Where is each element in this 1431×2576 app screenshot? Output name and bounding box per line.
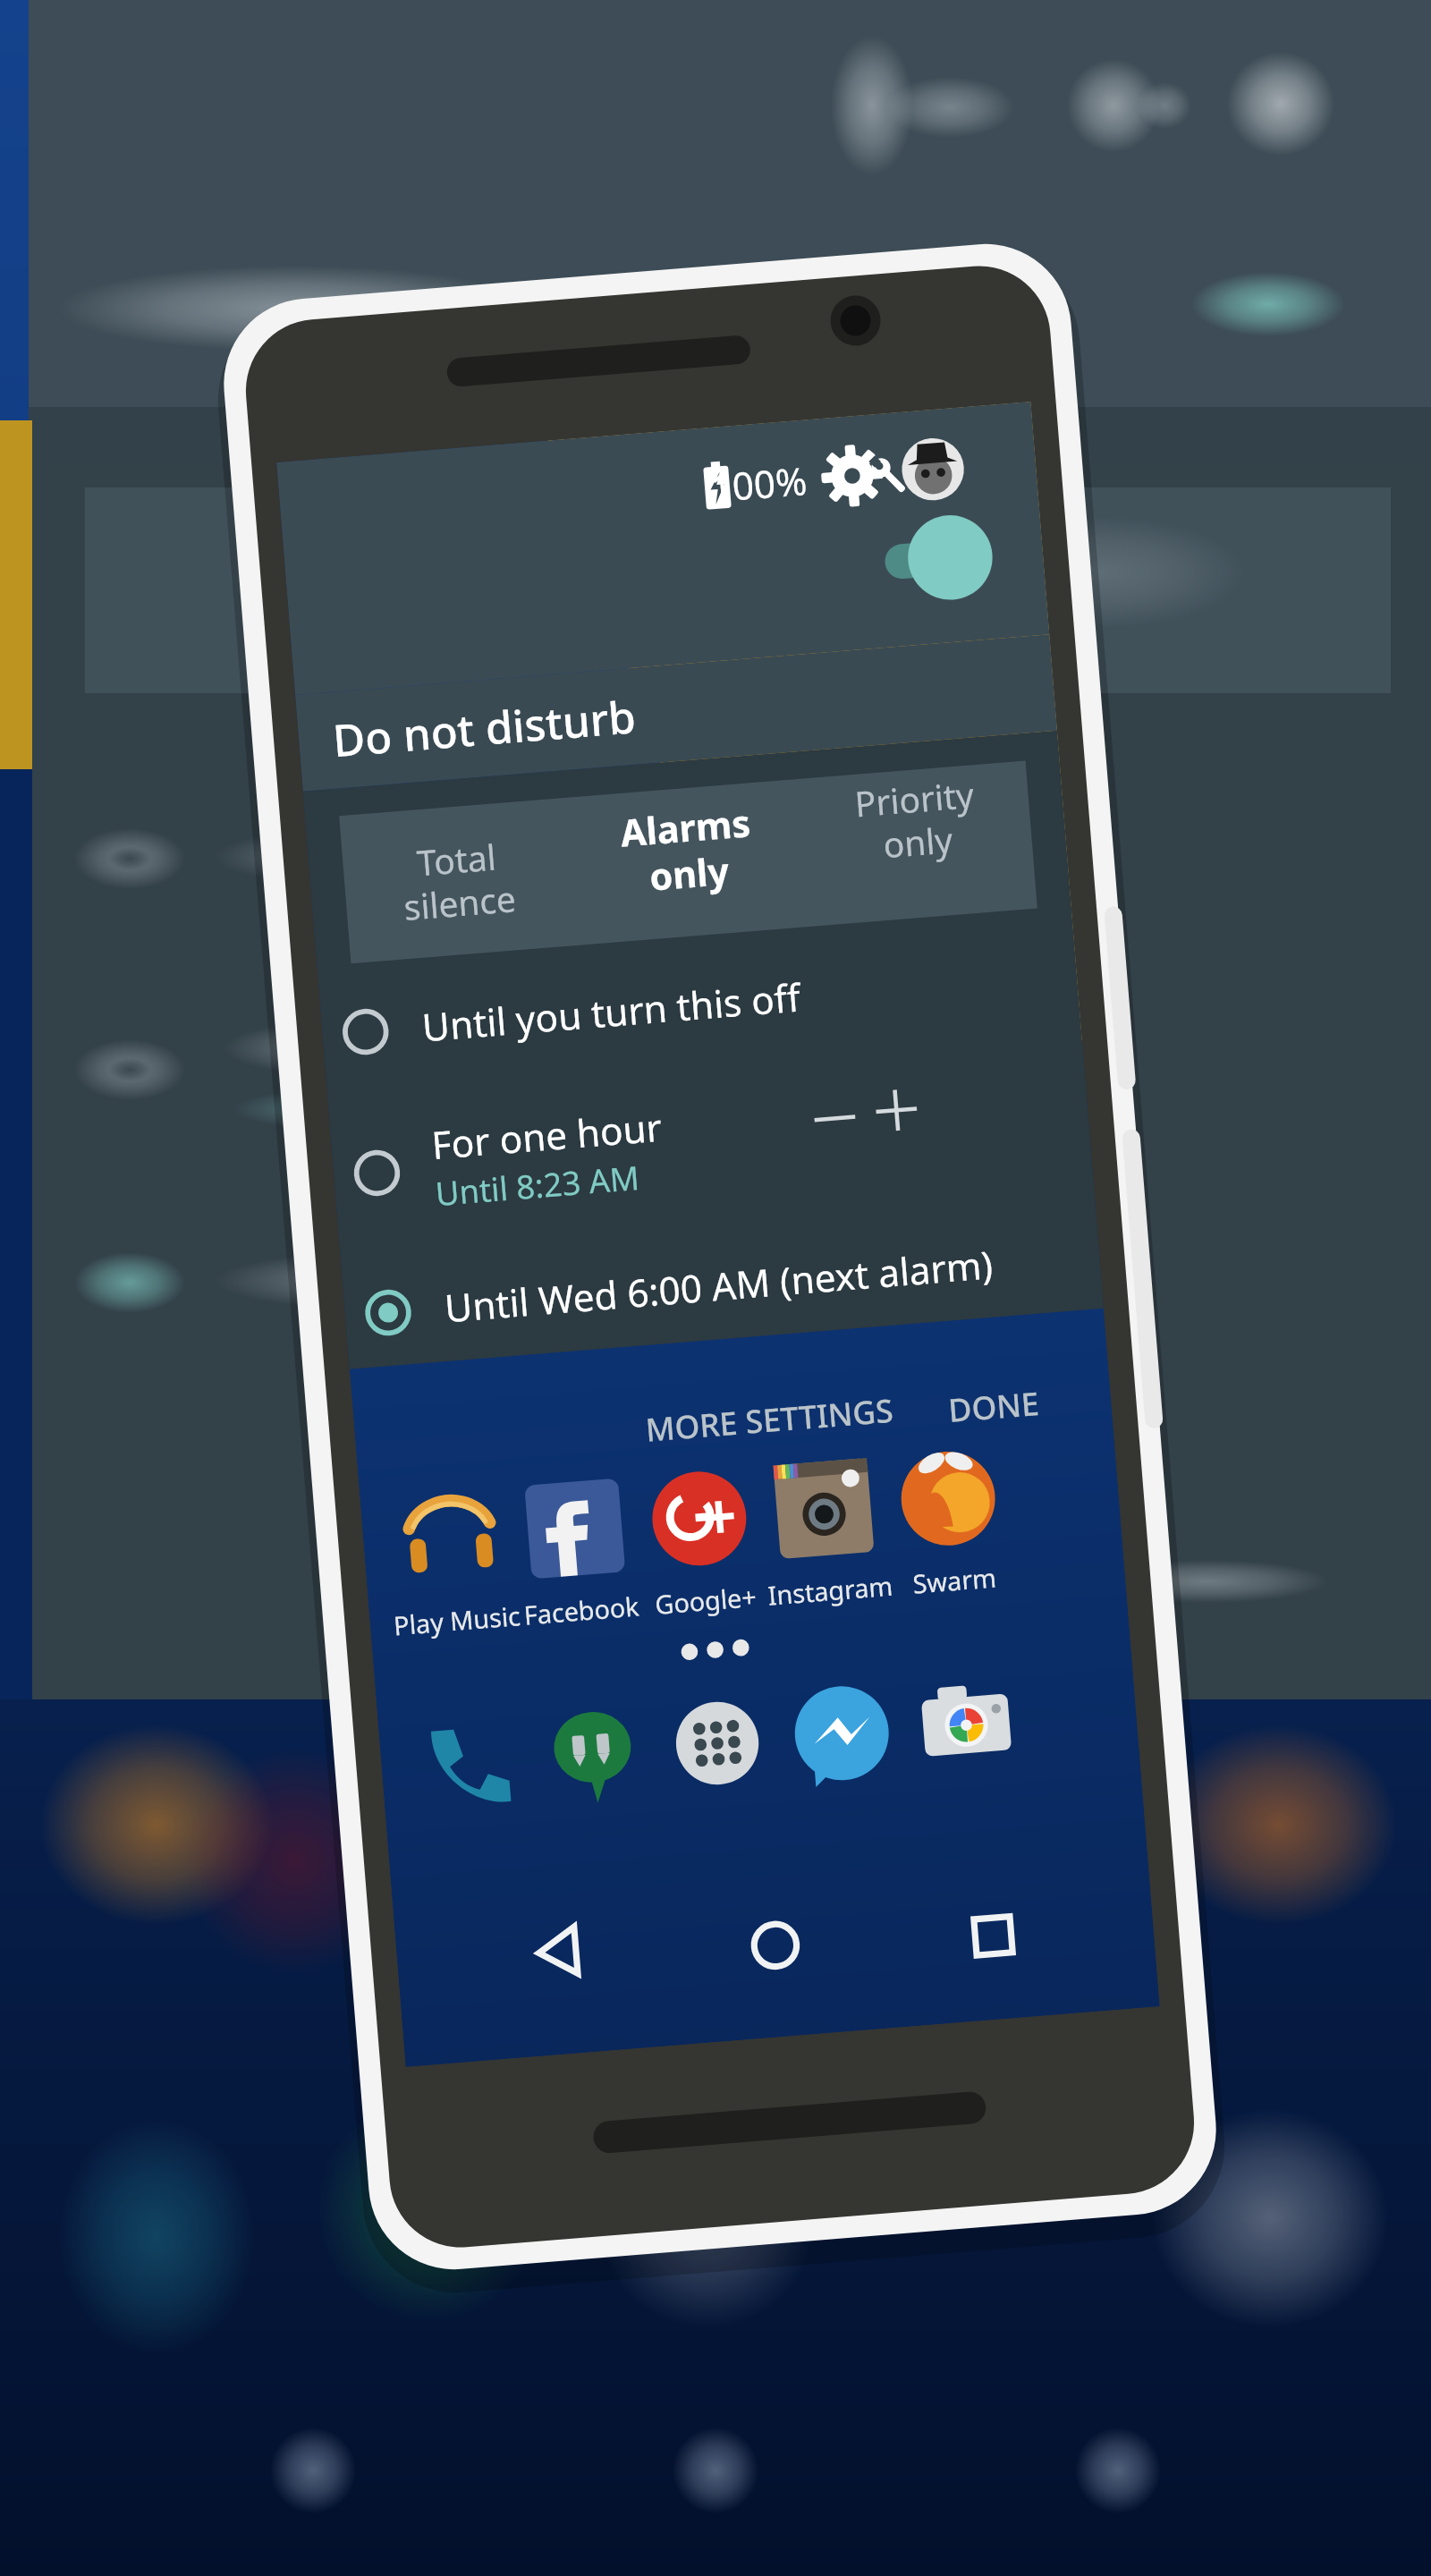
button[interactable] xyxy=(608,1425,894,1533)
button[interactable] xyxy=(758,1587,916,1741)
button[interactable] xyxy=(365,752,544,933)
button[interactable]: Account xyxy=(859,471,966,574)
button[interactable] xyxy=(916,1429,1073,1538)
button[interactable] xyxy=(200,1252,930,1381)
button[interactable] xyxy=(200,1092,744,1252)
button[interactable]: Recent apps xyxy=(690,1996,811,2120)
button[interactable] xyxy=(200,984,930,1113)
button[interactable]: Settings xyxy=(744,471,866,574)
button[interactable]: Decrease duration xyxy=(794,1092,880,1195)
button[interactable] xyxy=(315,1572,472,1726)
button[interactable]: Hangouts xyxy=(472,1809,608,1950)
button[interactable] xyxy=(615,1581,773,1736)
button[interactable]: Back xyxy=(241,1970,362,2094)
button[interactable] xyxy=(902,1592,1059,1747)
button[interactable] xyxy=(723,752,952,933)
button[interactable]: Phone xyxy=(329,1803,465,1945)
button[interactable]: Messenger xyxy=(756,1818,892,1960)
button[interactable] xyxy=(544,752,723,933)
button[interactable]: Camera xyxy=(899,1824,1035,1965)
button[interactable] xyxy=(472,1577,630,1732)
button[interactable]: Home xyxy=(465,1984,587,2107)
button[interactable]: Increase duration xyxy=(894,1089,980,1192)
button[interactable]: Do not disturb toggle xyxy=(866,582,1095,673)
